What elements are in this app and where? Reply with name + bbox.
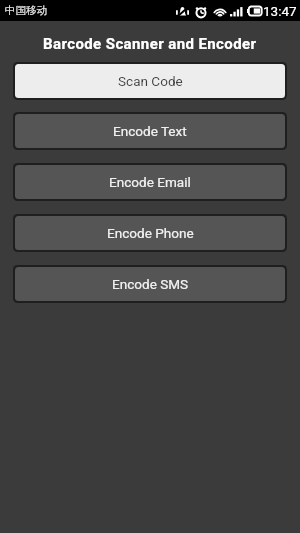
staticText: 中国移动: [5, 4, 47, 17]
staticText: Barcode Scanner and Encoder: [43, 35, 257, 53]
staticText: Encode Phone: [107, 225, 194, 241]
button[interactable]: Encode Email: [15, 165, 285, 199]
staticText: Encode Email: [109, 174, 191, 190]
button[interactable]: Encode SMS: [15, 267, 285, 301]
staticText: Encode SMS: [112, 276, 189, 292]
button[interactable]: Encode Phone: [15, 216, 285, 250]
staticText: Scan Code: [118, 73, 183, 89]
button[interactable]: Encode Text: [15, 114, 285, 148]
staticText: Encode Text: [113, 123, 187, 139]
button[interactable]: Scan Code: [15, 64, 285, 98]
other: Wi-Fi: [213, 6, 227, 17]
other: Alarm set: [195, 6, 207, 17]
other: Signal strength: [230, 6, 243, 17]
other: Silent mode: [176, 6, 189, 17]
staticText: 13:47: [263, 3, 297, 19]
other: Battery: [247, 6, 262, 16]
